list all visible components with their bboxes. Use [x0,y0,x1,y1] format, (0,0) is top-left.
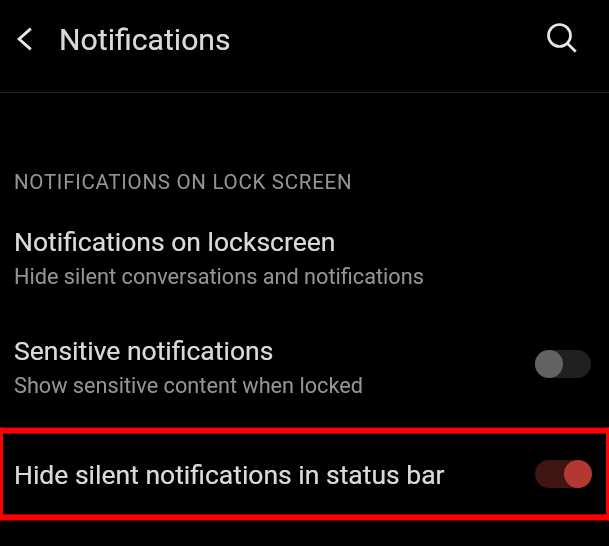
staticText: Notifications [59,22,231,57]
staticText: Hide silent notifications in status bar [14,459,535,490]
button[interactable]: Navigate up [2,16,48,62]
button[interactable]: Hide silent notifications in status bar [0,429,609,520]
staticText: Notifications on lockscreen [14,226,336,257]
staticText: Hide silent conversations and notificati… [14,264,424,289]
button[interactable]: Hide silent notifications in status bar,… [535,460,591,488]
button[interactable]: Search [536,12,583,59]
button[interactable]: Sensitive notifications [0,326,609,406]
staticText: Show sensitive content when locked [14,373,363,398]
staticText: Sensitive notifications [14,335,274,366]
staticText: NOTIFICATIONS ON LOCK SCREEN [14,170,353,194]
button[interactable]: Notifications on lockscreen [0,218,609,298]
button[interactable]: Sensitive notifications, off [535,350,591,378]
